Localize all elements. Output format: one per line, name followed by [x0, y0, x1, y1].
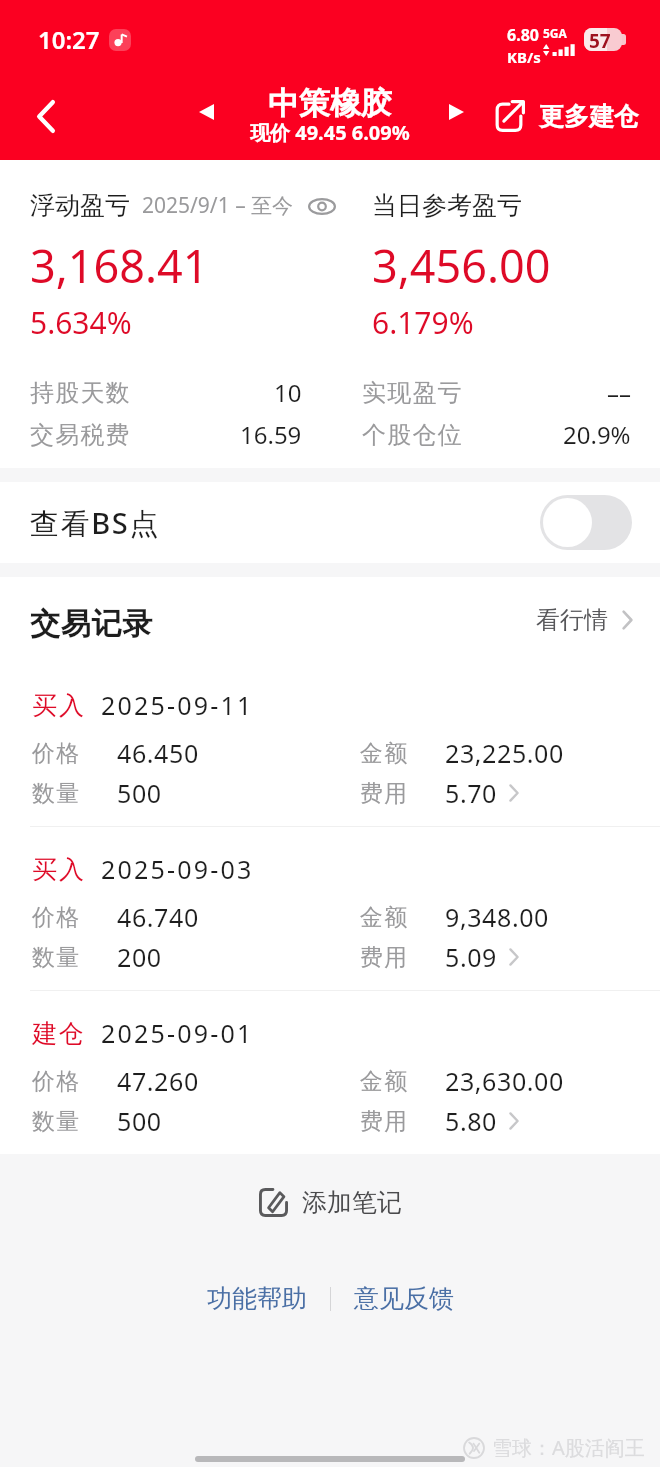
staticText: 当日参考盈亏	[372, 190, 522, 221]
staticText: 现价 49.45 6.09%	[250, 119, 410, 146]
staticText: 46.450	[117, 736, 199, 770]
staticText: 3,456.00	[372, 235, 551, 296]
staticText: KB/s	[507, 47, 541, 67]
button[interactable]: 更多建仓	[483, 100, 660, 132]
staticText: 10:27	[38, 23, 100, 56]
staticText: 2025/9/1 – 至今	[142, 191, 294, 220]
button[interactable]: 买入	[0, 663, 660, 826]
staticText: 5.70	[445, 776, 498, 810]
staticText: 3,168.41	[30, 235, 209, 296]
button[interactable]: 买入	[0, 827, 660, 990]
staticText: 500	[117, 1104, 162, 1138]
staticText: 价格	[31, 739, 80, 768]
staticText: 5.09	[445, 940, 498, 974]
button[interactable]: 看行情	[536, 605, 634, 635]
staticText: 数量	[31, 943, 80, 972]
staticText: 实现盈亏	[362, 378, 463, 408]
button[interactable]: Toggle visibility	[307, 191, 337, 221]
staticText: 添加笔记	[302, 1187, 402, 1218]
staticText: ––	[607, 376, 631, 409]
staticText: 个股仓位	[362, 420, 463, 450]
staticText: 查看BS点	[30, 503, 160, 543]
staticText: 5.80	[445, 1104, 498, 1138]
staticText: 46.740	[117, 900, 199, 934]
button[interactable]: Back	[21, 91, 71, 141]
button[interactable]: 查看BS点	[0, 482, 660, 563]
button[interactable]: 建仓	[0, 991, 660, 1154]
button[interactable]: Next stock	[438, 94, 474, 130]
staticText: 金额	[359, 903, 408, 932]
staticText: 买入	[31, 690, 85, 721]
staticText: 费用	[359, 943, 408, 972]
staticText: 5.634%	[30, 302, 132, 343]
staticText: 价格	[31, 903, 80, 932]
staticText: 23,630.00	[445, 1064, 564, 1098]
staticText: 金额	[359, 1067, 408, 1096]
staticText: 数量	[31, 779, 80, 808]
staticText: 雪球：A股活阎王	[492, 1434, 645, 1461]
staticText: 20.9%	[563, 418, 631, 451]
button[interactable]: 添加笔记	[249, 1181, 412, 1224]
staticText: 23,225.00	[445, 736, 564, 770]
staticText: 看行情	[536, 605, 608, 635]
staticText: 5GA	[543, 25, 567, 41]
staticText: 浮动盈亏	[30, 190, 130, 221]
staticText: 6.80	[507, 24, 539, 46]
button[interactable]: 意见反馈	[350, 1277, 458, 1320]
staticText: 2025-09-11	[101, 688, 254, 722]
staticText: 2025-09-01	[101, 1016, 254, 1050]
button[interactable]: Previous stock	[188, 94, 224, 130]
staticText: 费用	[359, 779, 408, 808]
staticText: 意见反馈	[354, 1283, 454, 1314]
staticText: 中策橡胶	[268, 84, 392, 123]
staticText: 交易税费	[30, 420, 131, 450]
staticText: 价格	[31, 1067, 80, 1096]
staticText: 57	[589, 28, 611, 51]
staticText: 功能帮助	[207, 1283, 307, 1314]
staticText: 2025-09-03	[101, 852, 254, 886]
staticText: 持股天数	[30, 378, 131, 408]
staticText: 16.59	[240, 418, 302, 451]
staticText: 更多建仓	[539, 101, 639, 132]
staticText: 交易记录	[30, 605, 154, 643]
button[interactable]: 功能帮助	[203, 1277, 311, 1320]
staticText: 建仓	[31, 1018, 85, 1049]
staticText: 9,348.00	[445, 900, 550, 934]
staticText: 数量	[31, 1107, 80, 1136]
staticText: 6.179%	[372, 302, 474, 343]
staticText: 47.260	[117, 1064, 199, 1098]
staticText: 金额	[359, 739, 408, 768]
staticText: 买入	[31, 854, 85, 885]
staticText: 费用	[359, 1107, 408, 1136]
staticText: 500	[117, 776, 162, 810]
staticText: 10	[274, 376, 302, 409]
staticText: 200	[117, 940, 162, 974]
